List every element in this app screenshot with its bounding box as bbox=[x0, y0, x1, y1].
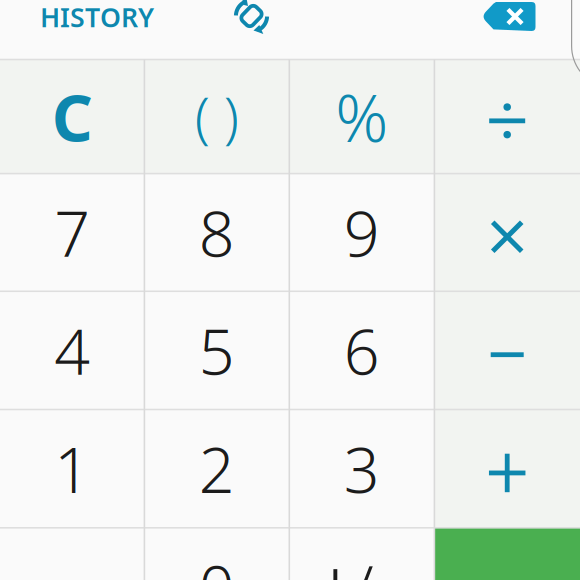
staticText: 2 bbox=[199, 427, 235, 510]
button[interactable]: 9 bbox=[289, 174, 434, 291]
staticText: 3 bbox=[344, 427, 380, 510]
button[interactable]: 3 bbox=[289, 409, 434, 528]
staticText: 1 bbox=[54, 427, 90, 510]
staticText: % bbox=[335, 73, 388, 160]
button[interactable]: Minus bbox=[434, 291, 580, 409]
button[interactable]: 8 bbox=[144, 174, 289, 291]
button[interactable]: 0 bbox=[144, 528, 289, 580]
staticText: 8 bbox=[199, 191, 235, 274]
button[interactable]: Divide bbox=[434, 59, 580, 174]
staticText: 0 bbox=[199, 545, 235, 580]
button[interactable]: Rotate screen bbox=[230, 0, 272, 37]
staticText: 7 bbox=[54, 191, 90, 274]
staticText: 9 bbox=[344, 191, 380, 274]
button[interactable]: Delete bbox=[482, 2, 535, 31]
button[interactable]: 6 bbox=[289, 291, 434, 409]
staticText: HISTORY bbox=[40, 0, 154, 35]
button[interactable]: Plus bbox=[434, 409, 580, 528]
staticText: ( ) bbox=[195, 80, 239, 153]
button[interactable]: Parentheses bbox=[144, 59, 289, 174]
button[interactable]: Clear bbox=[0, 59, 144, 174]
button[interactable]: Equals bbox=[434, 528, 580, 580]
button[interactable]: Percent bbox=[289, 59, 434, 174]
staticText: C bbox=[52, 74, 93, 159]
staticText: 6 bbox=[344, 309, 380, 392]
button[interactable]: 5 bbox=[144, 291, 289, 409]
button[interactable]: Reciprocal bbox=[289, 528, 434, 580]
button[interactable]: 4 bbox=[0, 291, 144, 409]
staticText: 5 bbox=[199, 309, 235, 392]
staticText: 4 bbox=[54, 309, 90, 392]
button[interactable]: 2 bbox=[144, 409, 289, 528]
button[interactable]: 7 bbox=[0, 174, 144, 291]
button[interactable]: Multiply bbox=[434, 174, 580, 291]
button[interactable]: HISTORY bbox=[40, 0, 154, 35]
button[interactable]: 1 bbox=[0, 409, 144, 528]
